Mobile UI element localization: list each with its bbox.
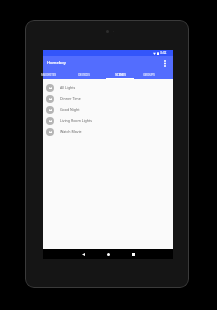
staticText: All Lights (60, 85, 76, 90)
staticText: Living Room Lights (60, 118, 93, 123)
staticText: 3:32 (160, 51, 167, 55)
staticText: Homeboy (47, 60, 66, 66)
button[interactable]: Good Night (43, 104, 173, 115)
button[interactable]: FAVORITES (30, 70, 66, 79)
button[interactable]: All Lights (43, 82, 173, 93)
button[interactable]: GROUPS (138, 70, 160, 79)
button[interactable]: SCENES (102, 70, 138, 79)
button[interactable]: Watch Movie (43, 126, 173, 137)
staticText: Watch Movie (60, 129, 82, 134)
staticText: SCENES (115, 73, 126, 77)
button[interactable]: Recents (128, 249, 138, 259)
button[interactable]: Home (103, 249, 113, 259)
button[interactable]: Back (78, 249, 88, 259)
staticText: DEVICES (78, 73, 90, 77)
button[interactable]: Dinner Time (43, 93, 173, 104)
staticText: FAVORITES (41, 73, 56, 77)
button[interactable]: Living Room Lights (43, 115, 173, 126)
staticText: GROUPS (143, 73, 155, 77)
staticText: Good Night (60, 107, 80, 112)
button[interactable]: DEVICES (66, 70, 102, 79)
staticText: Dinner Time (60, 96, 81, 101)
button[interactable]: More options (160, 58, 170, 68)
